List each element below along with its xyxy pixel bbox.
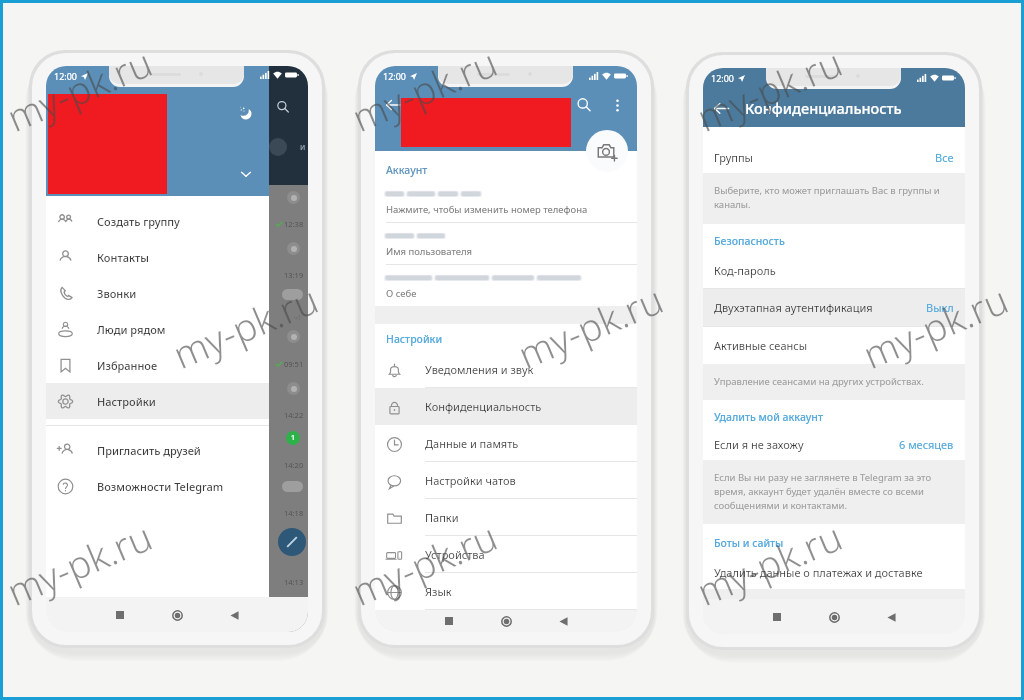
button[interactable]: Избранное — [46, 347, 269, 383]
button[interactable]: Search — [575, 96, 593, 114]
button[interactable]: Back — [878, 604, 904, 630]
button[interactable]: О себе — [375, 265, 637, 306]
button[interactable]: Recent apps — [436, 610, 462, 632]
staticText: Данные и память — [425, 436, 519, 451]
staticText: Избранное — [97, 358, 158, 373]
button[interactable]: Код-пароль — [703, 252, 965, 288]
staticText: my-pk.ru — [689, 509, 850, 617]
button[interactable]: Уведомления и звук — [375, 351, 637, 388]
staticText: my-pk.ru — [165, 272, 326, 380]
button[interactable]: Нажмите, чтобы изменить номер телефона — [375, 181, 637, 222]
staticText: Конфиденциальность — [425, 399, 542, 414]
staticText: Создать группу — [97, 214, 180, 229]
button[interactable]: Back — [384, 96, 402, 114]
staticText: Выкл — [926, 300, 954, 315]
staticText: Нажмите, чтобы изменить номер телефона — [386, 203, 588, 216]
staticText: Управление сеансами на других устройства… — [714, 375, 924, 388]
staticText: Настройки — [386, 332, 443, 346]
button[interactable]: Recent apps — [107, 602, 133, 628]
staticText: и — [300, 141, 306, 153]
staticText: my-pk.ru — [344, 35, 505, 143]
staticText: 12:38 — [284, 219, 304, 229]
button[interactable]: Night mode — [237, 104, 254, 121]
staticText: my-pk.ru — [510, 272, 671, 380]
staticText: Двухэтапная аутентификация — [714, 300, 873, 315]
button[interactable]: Устройства — [375, 536, 637, 573]
staticText: Удалить мой аккаунт — [714, 410, 823, 424]
staticText: 12:00 — [711, 72, 735, 84]
staticText: my-pk.ru — [0, 509, 160, 617]
button[interactable]: Папки — [375, 499, 637, 536]
button[interactable]: Звонки — [46, 275, 269, 311]
staticText: ч1 — [294, 313, 302, 322]
staticText: Если Вы ни разу не заглянете в Telegram … — [714, 471, 952, 512]
staticText: Код-пароль — [714, 263, 776, 278]
button[interactable]: Back — [221, 602, 247, 628]
button[interactable]: Home — [493, 610, 519, 632]
staticText: Настройки чатов — [425, 473, 516, 488]
staticText: 12:00 — [54, 70, 78, 82]
staticText: Контакты — [97, 250, 149, 265]
button[interactable]: Пригласить друзей — [46, 432, 269, 468]
button[interactable]: Данные и память — [375, 425, 637, 462]
button[interactable]: Настройки — [46, 383, 269, 419]
staticText: Уведомления и звук — [425, 362, 534, 377]
staticText: Если я не захожу — [714, 437, 804, 452]
button[interactable]: Группы — [703, 141, 965, 173]
staticText: Звонки — [97, 286, 137, 301]
staticText: 09:51 — [284, 359, 304, 369]
staticText: 12:00 — [383, 70, 407, 82]
button[interactable]: Активные сеансы — [703, 327, 965, 364]
staticText: Устройства — [425, 547, 485, 562]
button[interactable]: Возможности Telegram — [46, 468, 269, 504]
button[interactable]: Home — [821, 604, 847, 630]
staticText: Язык — [425, 584, 452, 599]
staticText: Боты и сайты — [714, 536, 784, 550]
staticText: 14:13 — [284, 577, 304, 587]
staticText: my-pk.ru — [855, 272, 1016, 380]
button[interactable]: Язык — [375, 573, 637, 610]
staticText: my-pk.ru — [344, 509, 505, 617]
staticText: Имя пользователя — [386, 245, 473, 258]
staticText: Выберите, кто может приглашать Вас в гру… — [714, 184, 952, 211]
staticText: Настройки — [97, 394, 156, 409]
staticText: Группы — [714, 150, 753, 165]
button[interactable]: Home — [164, 602, 190, 628]
staticText: Папки — [425, 510, 459, 525]
staticText: Возможности Telegram — [97, 479, 224, 494]
staticText: 6 месяцев — [899, 437, 954, 452]
button[interactable]: Люди рядом — [46, 311, 269, 347]
staticText: Удалить данные о платежах и доставке — [714, 565, 923, 580]
staticText: 14:22 — [284, 410, 304, 420]
staticText: Конфиденциальность — [745, 98, 902, 118]
staticText: 13:19 — [284, 270, 304, 280]
button[interactable]: Настройки чатов — [375, 462, 637, 499]
staticText: my-pk.ru — [0, 35, 160, 143]
button[interactable]: Expand accounts — [238, 166, 254, 182]
staticText: Пригласить друзей — [97, 443, 201, 458]
button[interactable]: Recent apps — [764, 604, 790, 630]
staticText: Активные сеансы — [714, 338, 808, 353]
staticText: 14:20 — [284, 460, 304, 470]
button[interactable]: Двухэтапная аутентификация — [703, 289, 965, 326]
staticText: my-pk.ru — [689, 35, 850, 143]
staticText: Безопасность — [714, 234, 785, 248]
staticText: Все — [935, 150, 954, 165]
button[interactable]: Создать группу — [46, 203, 269, 239]
button[interactable]: Имя пользователя — [375, 223, 637, 264]
staticText: Люди рядом — [97, 322, 166, 337]
button[interactable]: Если я не захожу — [703, 428, 965, 460]
button[interactable]: Change photo — [586, 130, 628, 172]
button[interactable]: Search chats — [273, 97, 293, 117]
staticText: 14:18 — [284, 508, 304, 518]
button[interactable]: More options — [608, 96, 626, 114]
button[interactable]: Back — [550, 610, 576, 632]
button[interactable]: Контакты — [46, 239, 269, 275]
staticText: 1 — [291, 433, 296, 443]
button[interactable]: Удалить данные о платежах и доставке — [703, 555, 965, 589]
staticText: Аккаунт — [386, 163, 428, 177]
button[interactable]: Back — [712, 99, 731, 118]
button[interactable]: Конфиденциальность — [375, 388, 637, 425]
staticText: О себе — [386, 287, 417, 300]
